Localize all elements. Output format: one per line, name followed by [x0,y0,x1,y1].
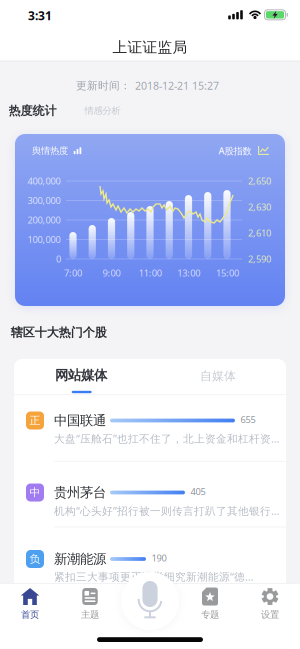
staticText: A股指数 [218,144,251,157]
staticText: 2,590 [248,253,271,265]
staticText: 热度统计 [8,103,56,118]
staticText: 自媒体 [200,369,236,383]
staticText: 紧扣三大事项更正选举细究新潮能源“德… [54,569,253,584]
staticText: 0 [56,253,61,265]
button[interactable]: 首页 [8,584,52,624]
staticText: 上证证监局 [112,38,187,56]
staticText: 中 [29,486,40,499]
staticText: 主题 [81,609,99,620]
staticText: 15:00 [216,267,239,279]
button[interactable]: 自媒体 [150,359,286,395]
staticText: 机构“心头好”招行被一则传言打趴了其他银行… [54,504,279,518]
staticText: 100,000 [27,233,60,246]
staticText: 2018-12-21 15:27 [135,79,219,93]
staticText: 2,630 [248,201,271,213]
button[interactable]: 负 [14,527,286,593]
staticText: 专题 [201,609,219,620]
staticText: 情感分析 [85,105,121,116]
staticText: 9:00 [103,267,121,279]
staticText: 网站媒体 [55,367,107,384]
staticText: 辖区十大热门个股 [11,325,107,340]
staticText: 负 [29,552,40,565]
staticText: 11:00 [139,267,162,279]
button[interactable]: 热度统计 [4,99,60,122]
staticText: 405 [190,485,205,498]
button[interactable]: 设置 [248,584,292,624]
staticText: 190 [151,552,166,564]
staticText: 200,000 [27,214,60,226]
staticText: 13:00 [177,267,200,279]
staticText: 新潮能源 [54,551,106,567]
staticText: 7:00 [64,267,82,279]
staticText: 2,650 [248,175,271,187]
staticText: 中国联通 [54,412,106,429]
button[interactable]: 情感分析 [81,101,125,120]
button[interactable]: 专题 [188,584,232,624]
staticText: 300,000 [27,194,60,207]
button[interactable]: 语音搜索 [121,572,179,630]
staticText: 贵州茅台 [54,484,106,501]
staticText: 正 [29,414,40,427]
staticText: 更新时间： [76,79,131,92]
staticText: 400,000 [27,175,60,187]
button[interactable]: 主题 [68,584,112,624]
button[interactable]: 正 [14,395,286,461]
staticText: 首页 [21,609,39,620]
staticText: 设置 [261,609,279,620]
staticText: 655 [240,413,255,426]
button[interactable]: 中 [14,462,286,528]
staticText: 3:31 [28,7,52,23]
staticText: 2,610 [248,227,271,239]
staticText: 舆情热度 [32,145,68,156]
button[interactable]: 网站媒体 [14,359,150,395]
staticText: 大盘“压舱石”也扛不住了，北上资金和杠杆资… [54,431,279,446]
